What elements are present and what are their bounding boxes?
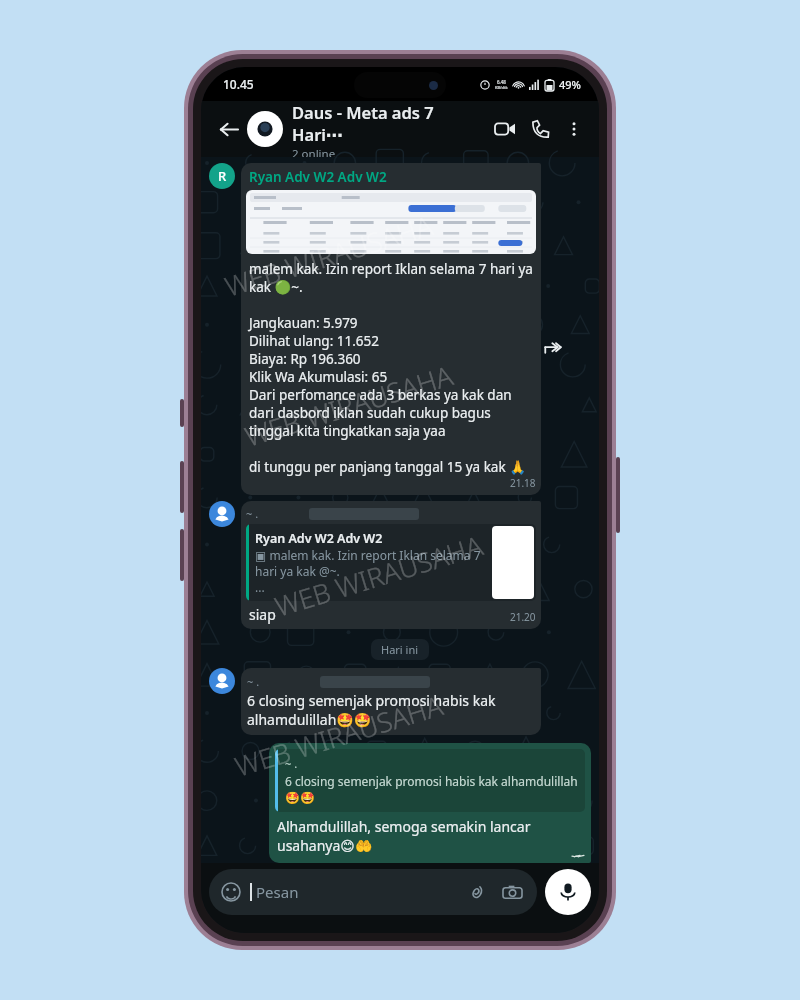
staticText: Hari ini [381,642,419,657]
button[interactable]: Voice message [545,869,591,915]
staticText: 49% [559,77,581,92]
button[interactable]: Ryan Adv W2 Adv W2 [241,163,541,495]
button[interactable]: Forward [541,337,563,359]
button[interactable]: More options [559,114,589,144]
staticText: Ryan Adv W2 Adv W2 [255,530,383,547]
staticText: R [218,167,227,185]
staticText: Ryan Adv W2 Adv W2 [249,168,387,186]
staticText: Alhamdulillah, semoga semakin lancar usa… [277,817,583,855]
staticText: malem kak. Izin report Iklan selama 7 ha… [249,260,533,476]
staticText: Pesan [256,882,463,902]
staticText: 6.48 [497,79,506,85]
button[interactable]: Attach [463,879,489,905]
staticText: WEB WIRAUSAHA [220,206,438,305]
button[interactable]: Pesan [209,869,537,915]
button[interactable]: Voice call [523,111,559,147]
staticText: Daus - Meta ads 7 Hari⋯ [292,101,487,145]
button[interactable] [247,111,283,147]
button[interactable]: Daus - Meta ads 7 Hari⋯ [292,101,487,157]
staticText: 2 online [292,146,336,157]
button[interactable]: ~ . [269,743,591,863]
staticText: WEB WIRAUSAHA [240,356,458,455]
button[interactable]: Video call [487,111,523,147]
staticText: WEB WIRAUSAHA [270,526,488,625]
button[interactable]: ~ . [241,668,541,735]
button[interactable]: Camera [499,879,525,905]
staticText: ~ . [246,506,259,521]
staticText: 21.20 [510,610,536,624]
staticText: 21.18 [510,476,536,490]
staticText: siap [249,605,510,624]
staticText: 6 closing semenjak promosi habis kak alh… [285,773,578,805]
staticText: 6 closing semenjak promosi habis kak alh… [247,691,535,729]
staticText: ... [255,579,265,595]
button[interactable]: ~ . [241,501,541,629]
staticText: WEB WIRAUSAHA [230,686,448,785]
staticText: ~ . [247,674,260,689]
staticText: ~ . [285,756,298,771]
staticText: 10.45 [223,76,254,92]
staticText: KB/dtk [495,85,508,90]
staticText: ▣ malem kak. Izin report Iklan selama 7 … [255,547,484,579]
button[interactable]: Back [211,112,245,146]
